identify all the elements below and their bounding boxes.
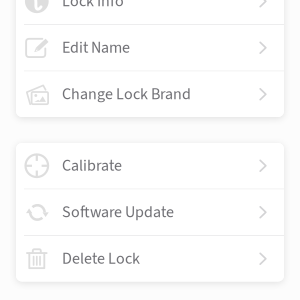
staticText: Edit Name: [62, 36, 130, 59]
staticText: Lock Info: [62, 0, 124, 13]
button[interactable]: Lock Info: [16, 0, 284, 24]
button[interactable]: Change Lock Brand: [16, 71, 284, 117]
button[interactable]: Software Update: [16, 189, 284, 235]
staticText: Calibrate: [62, 154, 122, 177]
staticText: Software Update: [62, 201, 174, 224]
staticText: Change Lock Brand: [62, 83, 191, 106]
button[interactable]: Calibrate: [16, 143, 284, 188]
staticText: Delete Lock: [62, 247, 140, 270]
button[interactable]: Delete Lock: [16, 236, 284, 281]
button[interactable]: Edit Name: [16, 25, 284, 70]
